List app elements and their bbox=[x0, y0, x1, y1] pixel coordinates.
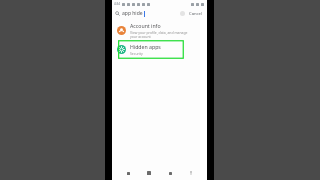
button[interactable]: Home bbox=[144, 168, 154, 178]
staticText: View your profile, data, and manage your… bbox=[130, 30, 188, 39]
button[interactable]: Cancel bbox=[188, 11, 204, 17]
staticText: Cancel bbox=[189, 11, 203, 17]
button[interactable]: More options bbox=[186, 168, 196, 178]
button[interactable]: Clear bbox=[180, 11, 185, 16]
button[interactable]: Back bbox=[165, 168, 175, 178]
button[interactable]: Hidden apps bbox=[112, 40, 207, 59]
other: Search bbox=[115, 11, 120, 16]
staticText: Account info bbox=[130, 22, 161, 29]
staticText: app hide bbox=[122, 10, 143, 17]
staticText: Hidden apps bbox=[130, 43, 161, 50]
button[interactable]: Recents bbox=[123, 168, 133, 178]
staticText: Security bbox=[130, 51, 143, 56]
staticText: 4:34 bbox=[114, 2, 120, 6]
button[interactable]: Account info bbox=[112, 21, 207, 40]
